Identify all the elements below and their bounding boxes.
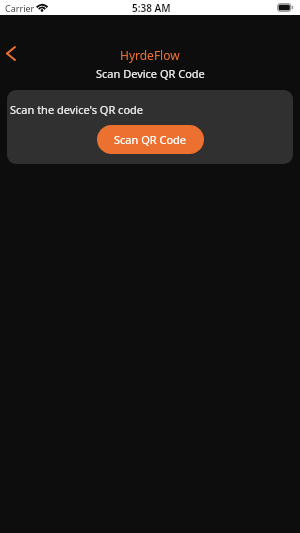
staticText: Scan Device QR Code xyxy=(96,66,205,81)
button[interactable]: Scan QR Code xyxy=(97,125,204,154)
staticText: HyrdeFlow xyxy=(120,47,180,63)
staticText: Scan the device's QR code xyxy=(10,102,144,117)
staticText: Carrier xyxy=(5,2,35,14)
staticText: Scan QR Code xyxy=(114,132,187,147)
staticText: 5:38 AM xyxy=(132,1,171,15)
button[interactable]: Back xyxy=(0,41,23,65)
